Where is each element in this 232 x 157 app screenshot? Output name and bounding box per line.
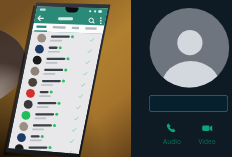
staticText: Video bbox=[192, 137, 222, 146]
staticText: Audio bbox=[157, 137, 187, 146]
button[interactable]: Video bbox=[192, 122, 222, 146]
button[interactable]: Call link bbox=[149, 95, 228, 112]
button[interactable]: Audio bbox=[157, 122, 187, 146]
button[interactable] bbox=[0, 0, 131, 157]
